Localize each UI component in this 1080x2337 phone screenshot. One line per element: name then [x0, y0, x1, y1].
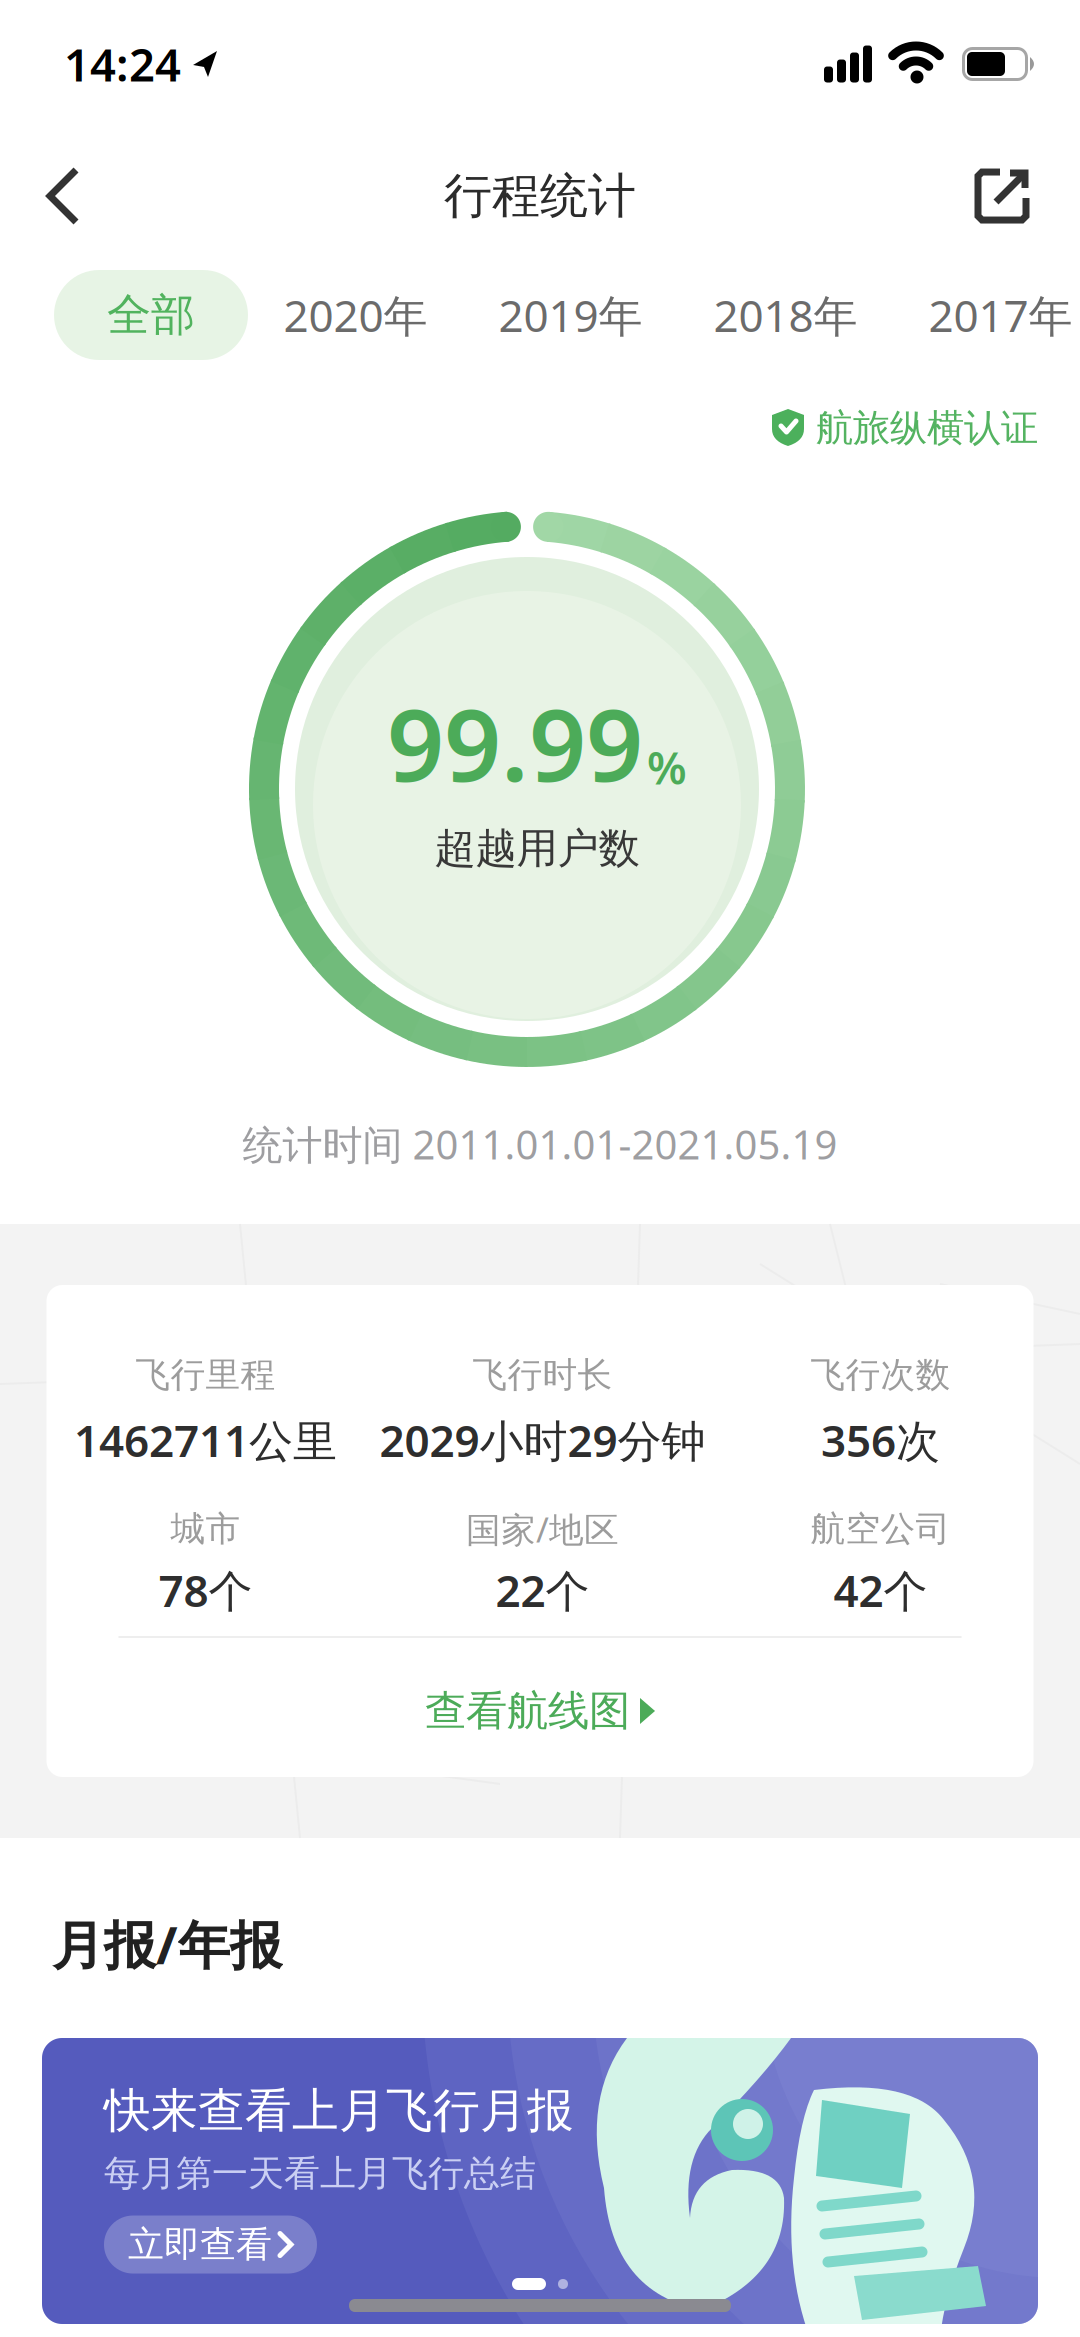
staticText: 快来查看上月飞行月报 [104, 2082, 574, 2139]
staticText: 42个 [833, 1561, 927, 1619]
staticText: 统计时间 2011.01.01-2021.05.19 [242, 1117, 837, 1170]
staticText: 行程统计 [444, 166, 636, 225]
button[interactable]: Share [944, 168, 1080, 224]
staticText: 全部 [107, 288, 195, 342]
button[interactable]: Location active [181, 49, 219, 79]
button[interactable]: 2019年 [463, 270, 678, 360]
staticText: 飞行次数 [810, 1354, 950, 1396]
staticText: 国家/地区 [466, 1506, 619, 1552]
staticText: 2017年 [928, 286, 1072, 344]
staticText: 立即查看 [128, 2222, 272, 2267]
staticText: 航空公司 [810, 1508, 950, 1550]
button[interactable]: 查看航线图 [425, 1638, 655, 1737]
button[interactable]: 2020年 [248, 270, 463, 360]
staticText: 2019年 [498, 286, 642, 344]
staticText: 飞行里程 [135, 1354, 275, 1396]
staticText: % [647, 737, 687, 797]
button[interactable]: Back [0, 168, 110, 224]
staticText: 城市 [170, 1508, 240, 1550]
staticText: 查看航线图 [425, 1686, 630, 1736]
staticText: 22个 [495, 1561, 589, 1619]
staticText: 356次 [821, 1411, 940, 1469]
staticText: 2029小时29分钟 [379, 1411, 705, 1469]
staticText: 2018年 [713, 286, 857, 344]
staticText: 超越用户数 [434, 823, 639, 874]
button[interactable]: 2017年 [893, 270, 1080, 360]
staticText: 飞行时长 [472, 1354, 612, 1396]
staticText: 1462711公里 [74, 1411, 337, 1469]
staticText: 99.99 [387, 676, 643, 809]
button[interactable]: 快来查看上月飞行月报 [42, 2038, 1038, 2324]
staticText: 14:24 [64, 34, 181, 94]
staticText: 月报/年报 [52, 1909, 282, 1979]
staticText: 2020年 [283, 286, 427, 344]
staticText: 78个 [158, 1561, 252, 1619]
button[interactable]: 全部 [54, 270, 248, 360]
staticText: 航旅纵横认证 [816, 405, 1038, 451]
button[interactable]: 2018年 [678, 270, 893, 360]
staticText: 每月第一天看上月飞行总结 [104, 2151, 536, 2195]
